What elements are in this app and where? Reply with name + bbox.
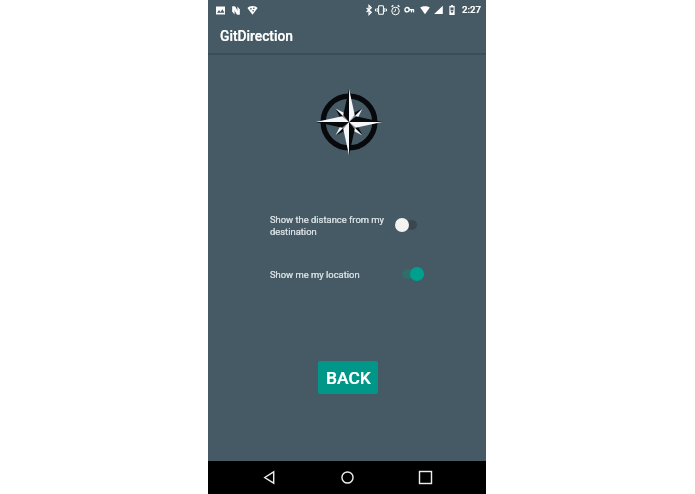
staticText: GitDirection bbox=[220, 28, 293, 44]
staticText: Show me my location bbox=[270, 269, 360, 280]
button[interactable]: Show me my location bbox=[270, 261, 438, 287]
staticText: Show the distance from my destination bbox=[270, 214, 390, 237]
button[interactable]: Show the distance from my destination bbox=[270, 209, 432, 241]
button[interactable]: Recent apps bbox=[386, 461, 464, 494]
staticText: BACK bbox=[326, 368, 371, 388]
button[interactable]: BACK bbox=[318, 361, 378, 394]
button[interactable]: Show me my location, on bbox=[402, 264, 424, 284]
button[interactable]: Back bbox=[230, 461, 308, 494]
button[interactable]: Show the distance from my destination, o… bbox=[395, 215, 417, 235]
button[interactable]: Home bbox=[308, 461, 386, 494]
staticText: 2:27 bbox=[462, 4, 481, 15]
